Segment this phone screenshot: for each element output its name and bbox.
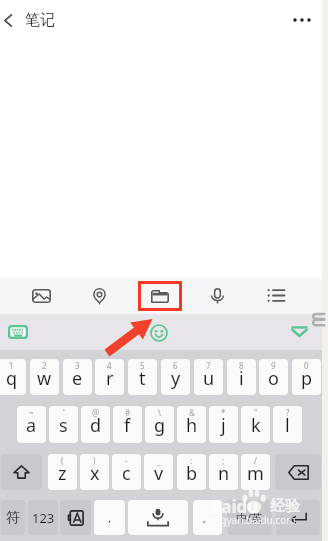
staticText: ~ [29,407,34,418]
button[interactable]: Backspace [275,454,321,490]
staticText: 0 [304,360,309,371]
staticText: \ [158,407,161,418]
staticText: ' [63,407,65,418]
button[interactable]: : [177,454,206,490]
button[interactable]: * [209,406,238,443]
button[interactable]: @ [81,406,110,443]
button[interactable]: ' [49,406,78,443]
button[interactable]: 0 [292,359,321,395]
button[interactable]: 6 [161,359,190,395]
button[interactable]: 中/英 [227,500,272,535]
staticText: h [186,413,198,438]
button[interactable]: 笔记 [25,5,55,35]
staticText: c [122,461,131,486]
staticText: k [251,413,261,438]
staticText: v [154,461,164,486]
staticText: n [218,461,230,486]
staticText: 4 [107,360,112,371]
staticText: q [6,366,18,391]
staticText: * [221,407,226,418]
staticText: 3 [75,360,80,371]
staticText: z [58,461,67,486]
button[interactable]: " [241,406,270,443]
staticText: i [239,366,244,391]
button[interactable]: Emoji [146,320,171,345]
button[interactable]: \ [145,406,174,443]
staticText: ) [93,455,96,466]
button[interactable]: ( [48,454,77,490]
staticText: t [139,366,146,391]
staticText: f [124,413,131,438]
staticText: u [203,366,215,391]
staticText: p [301,366,313,391]
button[interactable]: 。 [193,500,222,535]
button[interactable]: 1 [0,359,26,395]
staticText: d [90,413,102,438]
staticText: o [268,366,279,391]
staticText: : [190,455,193,466]
button[interactable]: More options [288,6,316,34]
button[interactable]: 123 [28,500,58,535]
staticText: Baidu [210,495,259,518]
staticText: / [254,455,257,466]
button[interactable]: ? [273,406,302,443]
staticText: a [26,413,37,438]
button[interactable]: Bulleted list [260,279,292,312]
button[interactable]: Keyboard [3,317,32,346]
staticText: ( [61,455,64,466]
button[interactable]: Enter [276,500,320,535]
staticText: e [72,366,83,391]
button[interactable]: # [113,406,142,443]
staticText: w [37,366,52,391]
button[interactable]: ) [80,454,109,490]
staticText: ， [104,511,115,525]
button[interactable]: 3 [63,359,92,395]
staticText: g [154,413,166,438]
staticText: y [171,366,181,391]
staticText: ; [222,455,225,466]
button[interactable]: ~ [17,406,46,443]
button[interactable]: Space [128,500,188,535]
staticText: 8 [239,360,244,371]
button[interactable]: Voice input [201,279,233,312]
button[interactable]: Shift [1,454,42,490]
staticText: 。 [202,511,213,525]
staticText: s [59,413,68,438]
button[interactable]: Location [83,279,115,312]
staticText: 2 [42,360,47,371]
button[interactable]: 8 [227,359,256,395]
staticText: 符 [6,509,20,527]
staticText: 经验 [270,497,300,516]
staticText: " [254,407,258,418]
button[interactable]: Switch language [60,500,91,535]
staticText: jingyan.baidu.com [209,513,296,527]
button[interactable]: 2 [30,359,59,395]
staticText: m [247,461,264,486]
staticText: j [221,413,226,438]
staticText: l [285,413,290,438]
button[interactable]: ， [94,500,125,535]
button[interactable]: 符 [1,500,25,535]
button[interactable]: 5 [128,359,157,395]
button[interactable]: Hide keyboard [287,319,312,344]
button[interactable]: / [241,454,270,490]
button[interactable]: Folder [138,281,182,311]
staticText: 笔记 [25,11,55,30]
staticText: 7 [206,360,211,371]
staticText: & [189,407,195,418]
staticText: 1 [9,360,14,371]
button[interactable]: 7 [194,359,223,395]
staticText: @ [92,407,100,418]
button[interactable]: Back [0,4,23,36]
button[interactable]: - [112,454,141,490]
button[interactable]: Insert image [25,279,57,312]
button[interactable]: 9 [259,359,288,395]
button[interactable]: ; [209,454,238,490]
button[interactable]: 4 [95,359,124,395]
button[interactable]: & [177,406,206,443]
staticText: r [106,366,114,391]
staticText: b [186,461,198,486]
button[interactable]: _ [144,454,173,490]
staticText: - [125,455,128,466]
staticText: ? [286,407,290,418]
